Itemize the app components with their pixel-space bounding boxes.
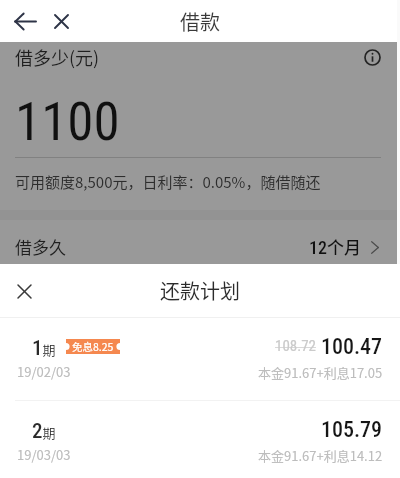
staticText: 借多少(元) (15, 44, 100, 70)
staticText: 还款计划 (160, 276, 240, 305)
button[interactable]: Close (42, 2, 80, 40)
staticText: 本金91.67+利息17.05 (258, 363, 383, 382)
staticText: 1100 (15, 91, 120, 153)
staticText: 2期 (32, 419, 56, 444)
staticText: 19/02/03 (17, 362, 71, 381)
staticText: 借款 (180, 7, 220, 36)
button[interactable]: Back (6, 2, 44, 40)
button[interactable]: Close (6, 273, 42, 309)
staticText: 可用额度8,500元，日利率：0.05%，随借随还 (15, 171, 321, 193)
staticText: 105.79 (321, 417, 383, 443)
staticText: 免息8.25 (72, 339, 114, 354)
staticText: 19/03/03 (17, 445, 71, 464)
staticText: 本金91.67+利息14.12 (258, 446, 383, 465)
staticText: 108.72 (275, 337, 316, 355)
button[interactable]: 借多久 (0, 223, 400, 269)
staticText: 12个月 (309, 234, 361, 259)
button[interactable]: 1期 (0, 318, 400, 400)
button[interactable]: 2期 (0, 401, 400, 478)
staticText: 1期 (32, 336, 56, 361)
button[interactable]: Info (361, 46, 383, 68)
staticText: 借多久 (15, 234, 66, 259)
staticText: 100.47 (321, 334, 383, 360)
